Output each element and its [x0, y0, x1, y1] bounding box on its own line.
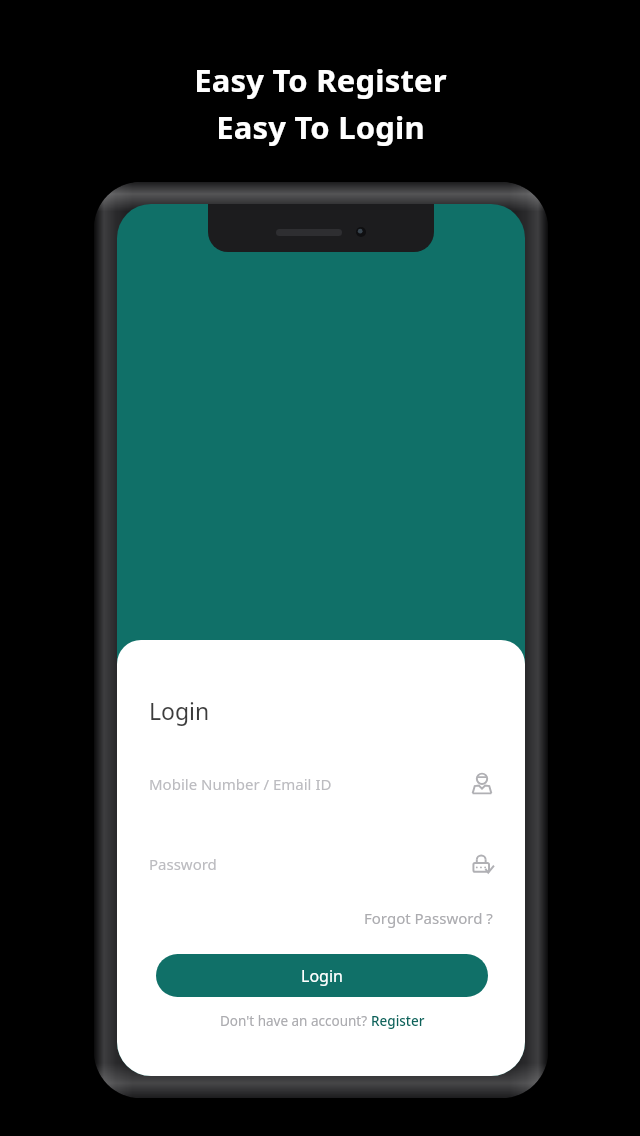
- button[interactable]: Don't have an account?: [149, 1012, 495, 1030]
- other: User account: [469, 771, 495, 797]
- other: Password lock: [469, 851, 495, 877]
- staticText: Password: [149, 854, 469, 874]
- staticText: Don't have an account?: [220, 1012, 371, 1030]
- staticText: Easy To Register: [194, 59, 447, 101]
- staticText: Forgot Password ?: [364, 908, 493, 928]
- button[interactable]: Forgot Password ?: [362, 904, 495, 932]
- button[interactable]: Password: [149, 842, 495, 886]
- staticText: Register: [371, 1012, 425, 1030]
- staticText: Easy To Login: [216, 106, 425, 148]
- button[interactable]: Mobile Number / Email ID: [149, 762, 495, 806]
- staticText: Login: [301, 965, 343, 987]
- staticText: Mobile Number / Email ID: [149, 774, 469, 794]
- button[interactable]: Login: [156, 954, 488, 997]
- staticText: Login: [149, 695, 210, 726]
